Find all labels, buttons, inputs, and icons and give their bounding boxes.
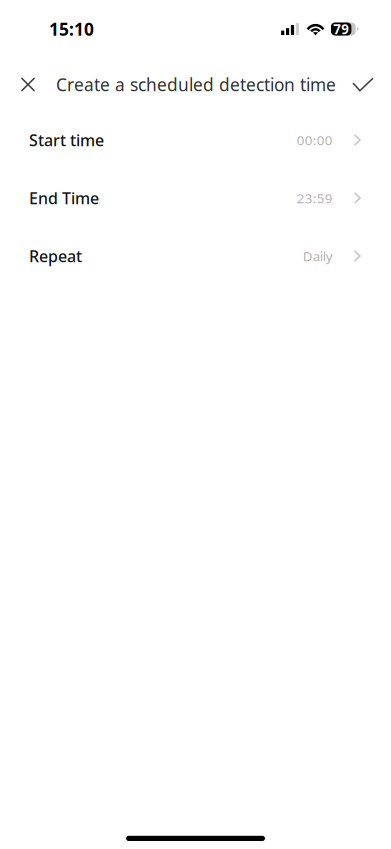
staticText: End Time: [29, 187, 99, 209]
staticText: 00:00: [297, 131, 333, 149]
button[interactable]: Confirm: [344, 65, 382, 103]
staticText: Daily: [303, 247, 333, 265]
button[interactable]: Close: [9, 65, 47, 103]
staticText: Repeat: [29, 245, 82, 267]
button[interactable]: Start time: [0, 111, 391, 169]
staticText: 15:10: [49, 17, 94, 40]
staticText: 79: [333, 20, 349, 38]
button[interactable]: Repeat: [0, 227, 391, 285]
staticText: 23:59: [297, 189, 333, 207]
button[interactable]: End Time: [0, 169, 391, 227]
staticText: Start time: [29, 129, 104, 151]
staticText: Create a scheduled detection time: [56, 73, 336, 96]
